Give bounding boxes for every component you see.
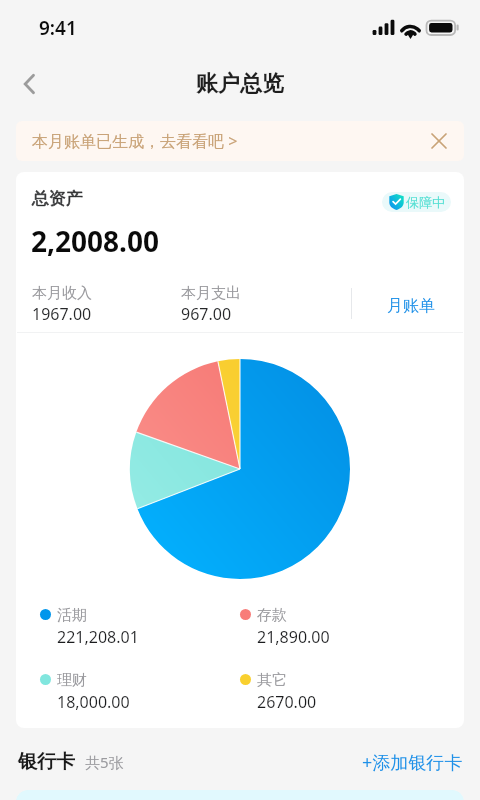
button[interactable]: 活期 [40, 606, 230, 662]
button[interactable]: Close banner [419, 121, 459, 161]
staticText: 本月收入 [32, 284, 92, 303]
staticText: 221,208.01 [57, 626, 139, 648]
staticText: 活期 [57, 606, 87, 625]
button[interactable]: 理财 [40, 671, 230, 727]
staticText: 共5张 [85, 752, 124, 772]
staticText: 账户总览 [196, 70, 284, 98]
staticText: 本月账单已生成，去看看吧 > [32, 130, 238, 152]
staticText: 其它 [257, 671, 287, 690]
staticText: 理财 [57, 671, 87, 690]
button[interactable]: 保障中 [382, 192, 451, 212]
staticText: 月账单 [387, 296, 435, 316]
staticText: 18,000.00 [57, 691, 130, 713]
staticText: 2670.00 [257, 691, 317, 713]
button[interactable]: Back [6, 60, 54, 108]
staticText: +添加银行卡 [362, 750, 463, 775]
staticText: 967.00 [181, 303, 232, 325]
staticText: 银行卡 [18, 750, 75, 774]
staticText: 2,2008.00 [31, 222, 159, 260]
button[interactable]: +添加银行卡 [362, 750, 463, 775]
button[interactable]: 本月账单已生成，去看看吧 > [16, 121, 464, 161]
staticText: 保障中 [406, 194, 445, 210]
staticText: 总资产 [32, 188, 83, 209]
staticText: 总资产 [32, 188, 83, 209]
staticText: 本月支出 [181, 284, 241, 303]
button[interactable]: 存款 [240, 606, 430, 662]
staticText: 21,890.00 [257, 626, 330, 648]
staticText: 存款 [257, 606, 287, 625]
button[interactable]: 其它 [240, 671, 430, 727]
button[interactable]: 月账单 [362, 284, 460, 328]
staticText: 1967.00 [32, 303, 92, 325]
staticText: 9:41 [39, 15, 77, 41]
